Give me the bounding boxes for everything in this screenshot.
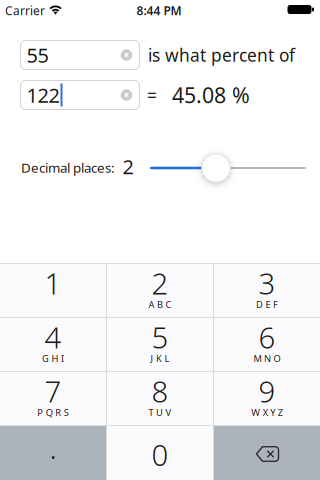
staticText: WXYZ xyxy=(251,406,283,419)
staticText: MNO xyxy=(253,352,280,365)
staticText: 5 xyxy=(151,317,168,356)
staticText: 55 xyxy=(26,42,48,68)
button[interactable]: 3 xyxy=(214,264,320,317)
staticText: is what percent of xyxy=(148,43,295,66)
button[interactable]: Clear text xyxy=(121,49,132,61)
staticText: ABC xyxy=(148,298,171,311)
staticText: 8 xyxy=(151,371,168,410)
staticText: 122 xyxy=(26,82,59,108)
staticText: GHI xyxy=(42,352,64,365)
staticText: DEF xyxy=(256,298,278,311)
staticText: 6 xyxy=(258,317,275,356)
staticText: TUV xyxy=(148,406,171,419)
button[interactable]: Delete xyxy=(214,426,320,480)
button[interactable]: . xyxy=(0,426,106,480)
staticText: 8:44 PM xyxy=(136,2,181,18)
button[interactable]: 8 xyxy=(107,372,213,425)
button[interactable]: 7 xyxy=(0,372,106,425)
staticText: 3 xyxy=(258,263,275,302)
staticText: 7 xyxy=(44,371,61,410)
button[interactable]: 5 xyxy=(107,318,213,371)
button[interactable]: 4 xyxy=(0,318,106,371)
staticText: Decimal places: xyxy=(21,159,115,176)
button[interactable]: 122 xyxy=(20,80,140,110)
staticText: 0 xyxy=(151,435,168,474)
staticText: 45.08 % xyxy=(172,81,250,109)
staticText: PQRS xyxy=(37,406,69,419)
staticText: 4 xyxy=(44,317,61,356)
staticText: Carrier xyxy=(5,2,45,18)
button[interactable]: 9 xyxy=(214,372,320,425)
button[interactable]: 1 xyxy=(0,264,106,317)
staticText: 9 xyxy=(258,371,275,410)
staticText: = xyxy=(147,83,157,106)
staticText: JKL xyxy=(150,352,169,365)
staticText: 1 xyxy=(44,263,61,302)
staticText: . xyxy=(49,428,56,467)
button[interactable]: 0 xyxy=(107,426,213,480)
button[interactable]: Decimal places xyxy=(201,153,230,182)
staticText: 2 xyxy=(122,153,133,180)
button[interactable]: Clear text xyxy=(121,89,132,101)
button[interactable]: 2 xyxy=(107,264,213,317)
staticText: 2 xyxy=(151,263,168,302)
button[interactable]: 6 xyxy=(214,318,320,371)
button[interactable]: 55 xyxy=(20,40,140,70)
